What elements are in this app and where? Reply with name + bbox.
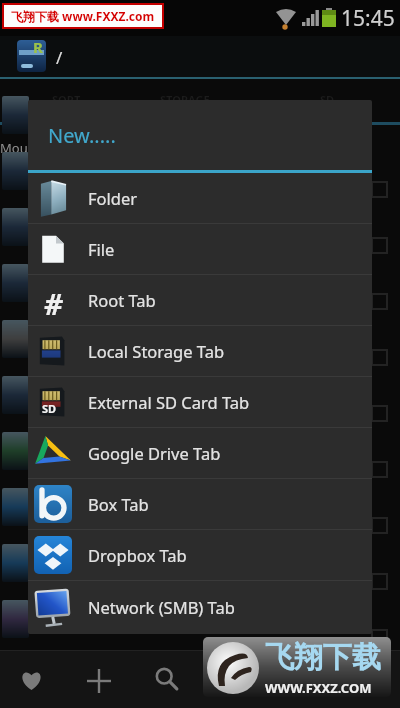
button[interactable]: Folder (28, 173, 372, 224)
staticText: 飞翔下载 www.FXXZ.com (11, 8, 155, 24)
staticText: New..... (48, 122, 116, 149)
staticText: STORAGE (160, 92, 210, 107)
button[interactable]: R (17, 40, 46, 72)
staticText: Box Tab (88, 493, 149, 515)
staticText: SD (320, 92, 335, 107)
staticText: External SD Card Tab (88, 391, 250, 413)
staticText: File (88, 238, 115, 260)
staticText: # (44, 284, 63, 316)
staticText: 飞翔下载 (265, 639, 381, 676)
staticText: Local Storage Tab (88, 340, 225, 362)
staticText: / (56, 46, 63, 69)
button[interactable]: Network (SMB) Tab (28, 581, 372, 632)
button[interactable] (155, 667, 178, 690)
button[interactable]: Local Storage Tab (28, 326, 372, 377)
button[interactable] (21, 671, 42, 690)
staticText: Network (SMB) Tab (88, 596, 235, 618)
staticText: WWW.FXXZ.COM (265, 679, 372, 697)
staticText: Mou (0, 139, 28, 157)
button[interactable]: Google Drive Tab (28, 428, 372, 479)
staticText: R (33, 40, 43, 57)
staticText: Folder (88, 187, 138, 209)
button[interactable]: 飞翔下载 (203, 637, 391, 697)
staticText: 15:45 (341, 4, 395, 33)
button[interactable]: # (28, 275, 372, 326)
staticText: SD (42, 401, 57, 416)
staticText: Dropbox Tab (88, 544, 187, 566)
staticText: Root Tab (88, 289, 156, 311)
staticText: SORT (52, 92, 81, 107)
button[interactable]: SD (28, 377, 372, 428)
staticText: Google Drive Tab (88, 442, 221, 464)
button[interactable] (87, 669, 111, 693)
button[interactable]: Box Tab (28, 479, 372, 530)
button[interactable]: File (28, 224, 372, 275)
button[interactable]: Dropbox Tab (28, 530, 372, 581)
button[interactable]: 飞翔下载 www.FXXZ.com (2, 3, 164, 29)
